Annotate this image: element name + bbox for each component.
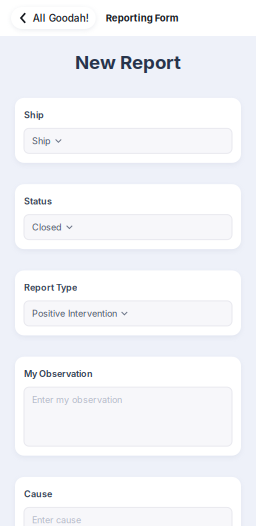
staticText: Enter my observation <box>32 394 122 405</box>
staticText: Reporting Form <box>106 12 179 24</box>
staticText: Positive Intervention <box>32 308 117 319</box>
staticText: New Report <box>75 51 181 74</box>
button[interactable]: Closed <box>24 215 232 240</box>
staticText: Enter cause <box>32 514 81 525</box>
button[interactable]: All Goodah! <box>11 7 96 29</box>
staticText: Report Type <box>24 282 77 293</box>
staticText: Cause <box>24 488 52 499</box>
staticText: All Goodah! <box>33 12 89 24</box>
staticText: Status <box>24 196 52 207</box>
button[interactable]: Positive Intervention <box>24 301 232 326</box>
staticText: Ship <box>32 135 51 146</box>
button[interactable]: Enter my observation <box>24 387 232 446</box>
button[interactable]: Ship <box>24 128 232 153</box>
staticText: Ship <box>24 109 44 120</box>
staticText: My Observation <box>24 368 93 379</box>
staticText: Closed <box>32 222 62 233</box>
button[interactable]: Enter cause <box>24 507 232 526</box>
